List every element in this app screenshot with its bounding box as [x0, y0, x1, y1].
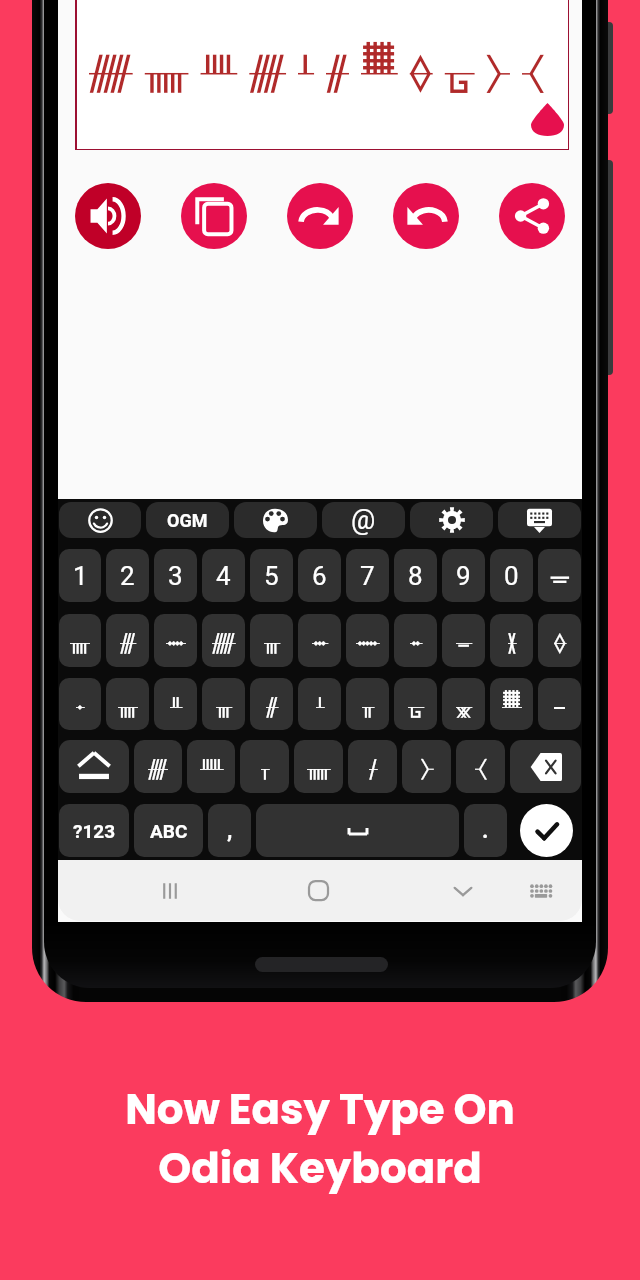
staticText: 4 [216, 561, 231, 591]
button[interactable]: ᚛ [402, 740, 451, 793]
button[interactable]: Backspace [510, 740, 581, 793]
staticText: ᚖ [554, 623, 566, 658]
button[interactable]: ᚎ [134, 740, 182, 793]
button[interactable]: ABC [134, 804, 203, 857]
staticText: ᚑ [410, 623, 422, 658]
button[interactable]: 2 [106, 549, 149, 602]
button[interactable]: 4 [202, 549, 245, 602]
button[interactable]: ᚄ [106, 678, 149, 730]
staticText: ᚘ [456, 687, 472, 722]
staticText: ᚂ [362, 687, 374, 722]
button[interactable]: ᚍ [106, 614, 149, 667]
staticText: ᚃ [216, 687, 232, 722]
staticText: ᚏ [212, 623, 235, 658]
button[interactable]: ᚙ [490, 678, 533, 730]
staticText: ABC [150, 820, 188, 842]
staticText: 8 [408, 561, 423, 591]
staticText: ᚁ [261, 749, 269, 784]
button[interactable]: Copy [181, 183, 247, 249]
button[interactable]: OGM [146, 502, 229, 538]
button[interactable]: Emoji [59, 502, 141, 538]
button[interactable]: ᚄ [59, 614, 101, 667]
button[interactable]: Settings [410, 502, 493, 538]
button[interactable]: ᚓ [154, 614, 197, 667]
staticText: ᚙ [502, 687, 522, 722]
button[interactable]: ᚐ [59, 678, 101, 730]
button[interactable]: ᚊ [187, 740, 235, 793]
button[interactable]: ᚒ [298, 614, 341, 667]
staticText: 7 [360, 561, 375, 591]
staticText: ᚃ [264, 623, 280, 658]
staticText: ᚇ [170, 687, 182, 722]
button[interactable]: 8 [394, 549, 437, 602]
staticText: ᚔ [356, 623, 379, 658]
staticText: 3 [168, 561, 183, 591]
staticText: ᚎ [148, 749, 168, 784]
button[interactable]: ?123 [59, 804, 129, 857]
staticText: . [482, 818, 489, 844]
button[interactable]: Sound [75, 183, 141, 249]
staticText: 5 [264, 561, 279, 591]
staticText: ᚜ [475, 749, 487, 784]
button[interactable]: 5 [250, 549, 293, 602]
button[interactable]: ᚆ [298, 678, 341, 730]
staticText: ᚒ [312, 623, 328, 658]
button[interactable]: ᚚ [538, 549, 581, 602]
staticText: 2 [120, 561, 135, 591]
staticText: 9 [456, 561, 471, 591]
button[interactable]: ᚃ [202, 678, 245, 730]
button[interactable]: ᚂ [346, 678, 389, 730]
button[interactable]: Redo [287, 183, 353, 249]
button[interactable]: , [208, 804, 251, 857]
button[interactable]: Share [499, 183, 565, 249]
staticText: ᚓ [166, 623, 186, 658]
button[interactable]: 0 [490, 549, 533, 602]
button[interactable]: 3 [154, 549, 197, 602]
button[interactable]: ᚔ [346, 614, 389, 667]
button[interactable]: ᚜ [456, 740, 505, 793]
staticText: 1 [73, 561, 88, 591]
button[interactable]: ᚖ [538, 614, 581, 667]
button[interactable]: ᚋ [348, 740, 397, 793]
button[interactable]: Shift [59, 740, 129, 793]
button[interactable]: ᚇ [154, 678, 197, 730]
staticText: ᚛ [421, 749, 433, 784]
button[interactable]: Hide keyboard [498, 502, 581, 538]
staticText: ᚅ [307, 749, 330, 784]
button[interactable]: . [464, 804, 507, 857]
staticText: 0 [504, 561, 519, 591]
button[interactable]: Back [433, 860, 493, 921]
staticText: 6 [312, 561, 327, 591]
staticText: @ [351, 504, 376, 536]
button[interactable]: Recents [140, 860, 200, 921]
button[interactable]: ᚘ [442, 678, 485, 730]
button[interactable]: ᚅ [294, 740, 343, 793]
button[interactable]: 1 [59, 549, 101, 602]
button[interactable]: ᚌ [250, 678, 293, 730]
staticText: ᚏᚅᚉᚎᚆᚌᚙᚖᚗ᚛᚜ [89, 37, 558, 102]
button[interactable]: ᚕ [490, 614, 533, 667]
button[interactable]: Space [256, 804, 459, 857]
staticText: Now Easy Type On Odia Keyboard [0, 1080, 640, 1198]
button[interactable]: Home [288, 860, 348, 921]
staticText: ᚐ [76, 687, 84, 722]
button[interactable]: – [538, 678, 581, 730]
button[interactable]: ᚏ [202, 614, 245, 667]
button[interactable]: 9 [442, 549, 485, 602]
staticText: ᚋ [369, 749, 377, 784]
button[interactable]: @ [322, 502, 405, 538]
button[interactable]: 6 [298, 549, 341, 602]
button[interactable]: Undo [393, 183, 459, 249]
button[interactable]: ᚁ [240, 740, 289, 793]
button[interactable]: ᚗ [394, 678, 437, 730]
button[interactable]: ᚚ [442, 614, 485, 667]
button[interactable]: Enter [512, 804, 581, 857]
staticText: ᚚ [456, 623, 472, 658]
staticText: ᚚ [551, 561, 569, 591]
button[interactable]: 7 [346, 549, 389, 602]
button[interactable]: Theme [234, 502, 317, 538]
button[interactable]: Keyboard [511, 860, 571, 921]
button[interactable]: ᚑ [394, 614, 437, 667]
button[interactable]: ᚃ [250, 614, 293, 667]
staticText: ?123 [73, 820, 116, 842]
